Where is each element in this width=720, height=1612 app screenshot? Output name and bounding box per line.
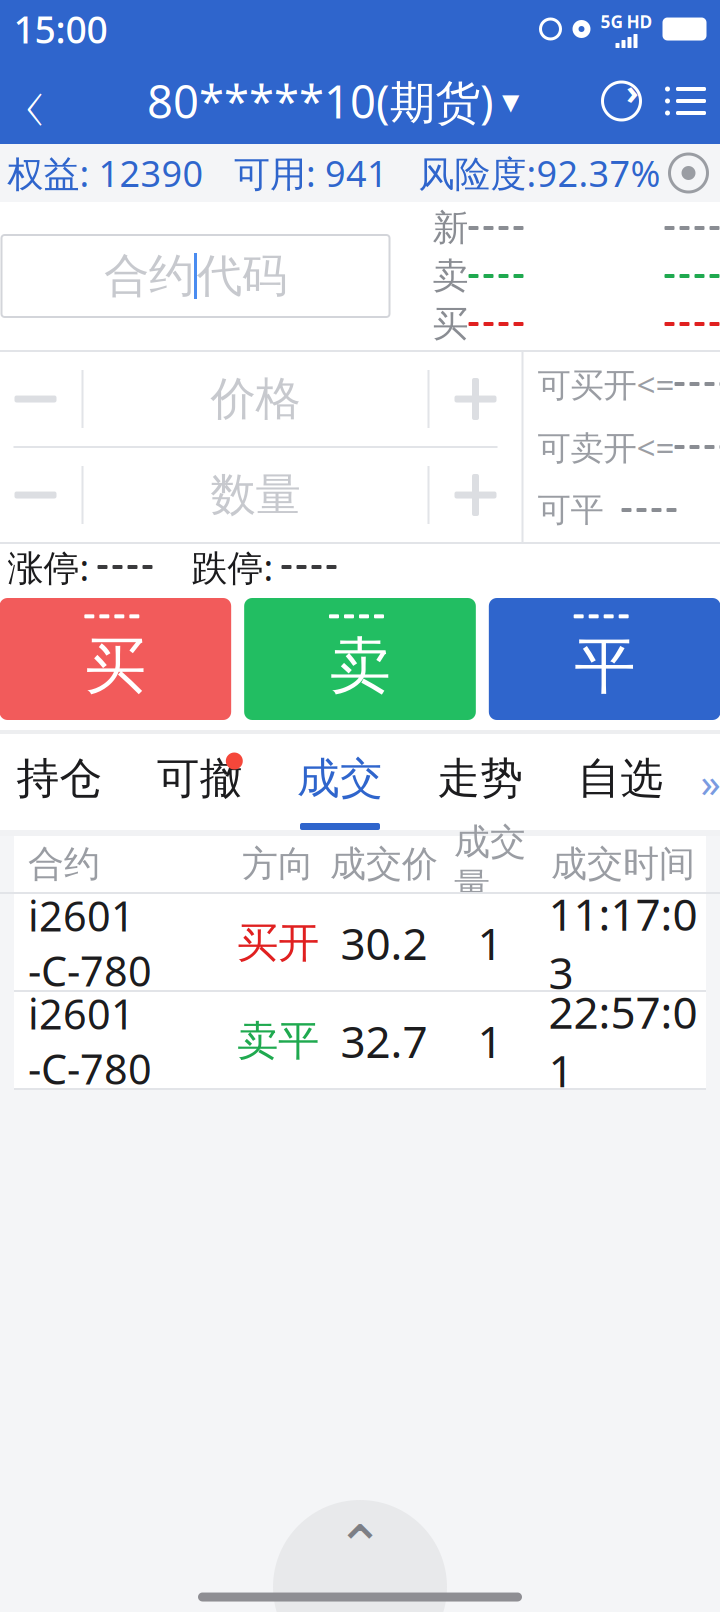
staticText: 卖: [432, 254, 468, 298]
button[interactable]: Expand panel: [273, 1490, 447, 1582]
staticText: 成交价: [330, 842, 438, 886]
staticText: 权益: 12390: [7, 149, 203, 197]
staticText: 80*****10(期货): [147, 71, 494, 131]
staticText: 新: [432, 206, 468, 250]
button[interactable]: i2601: [14, 992, 706, 1090]
button[interactable]: i2601: [14, 894, 706, 992]
button[interactable]: 卖: [244, 598, 476, 720]
staticText: 卖平: [237, 1016, 319, 1066]
staticText: 合约: [28, 842, 100, 886]
button[interactable]: 持仓: [0, 734, 130, 830]
staticText: 数量: [210, 467, 300, 523]
staticText: 30.2: [340, 914, 427, 972]
button[interactable]: Menu: [654, 58, 716, 144]
staticText: 持仓: [17, 752, 103, 805]
staticText: 跌停:: [191, 543, 273, 591]
staticText: ‹: [25, 46, 43, 156]
staticText: 22:57:01: [548, 983, 697, 1099]
staticText: 方向: [242, 842, 314, 886]
button[interactable]: 成交: [270, 734, 410, 830]
staticText: 1: [477, 1012, 502, 1070]
staticText: 平: [574, 628, 635, 704]
staticText: 成交量: [454, 820, 526, 908]
staticText: 自选: [577, 752, 663, 805]
staticText: -C-780: [28, 1041, 152, 1096]
button[interactable]: 合约: [1, 235, 389, 317]
staticText: 1: [477, 914, 502, 972]
button[interactable]: More tabs: [690, 734, 720, 830]
button[interactable]: 平: [489, 598, 720, 720]
button[interactable]: 买: [0, 598, 231, 720]
staticText: 风险度:92.37%: [418, 149, 660, 197]
staticText: ▾: [502, 81, 519, 121]
staticText: i2601: [28, 986, 135, 1041]
staticText: 32.7: [340, 1012, 427, 1070]
staticText: 走势: [437, 752, 523, 805]
staticText: 成交时间: [551, 842, 695, 886]
staticText: i2601: [28, 888, 135, 943]
staticText: HD: [626, 10, 652, 33]
staticText: 5G: [600, 10, 623, 33]
staticText: 可卖开<=: [537, 425, 674, 469]
button[interactable]: Decrease 价格: [0, 352, 81, 446]
staticText: »: [700, 755, 720, 808]
button[interactable]: 走势: [410, 734, 550, 830]
staticText: 可买开<=: [537, 362, 674, 406]
button[interactable]: Toggle visibility: [660, 145, 716, 201]
staticText: ⌃: [335, 1513, 384, 1580]
staticText: 11:17:03: [548, 885, 697, 1001]
button[interactable]: Increase 价格: [429, 352, 521, 446]
staticText: 卖: [329, 628, 390, 704]
button[interactable]: Refresh: [588, 58, 654, 144]
staticText: 买: [85, 628, 146, 704]
button[interactable]: Back: [0, 58, 77, 144]
staticText: 15:00: [13, 4, 107, 54]
staticText: 成交: [297, 752, 383, 805]
staticText: 可平: [537, 489, 613, 530]
button[interactable]: 80*****10(期货): [141, 58, 525, 144]
staticText: 可用: 941: [234, 149, 388, 197]
staticText: 合约: [104, 248, 194, 304]
staticText: 买: [432, 302, 468, 346]
button[interactable]: Increase 数量: [429, 448, 521, 542]
staticText: -C-780: [28, 943, 152, 998]
staticText: 涨停:: [7, 543, 89, 591]
staticText: 代码: [197, 248, 287, 304]
staticText: ›: [626, 68, 639, 114]
button[interactable]: Decrease 数量: [0, 448, 81, 542]
staticText: 买开: [237, 918, 319, 968]
button[interactable]: 可撤: [130, 734, 270, 830]
staticText: 价格: [210, 371, 300, 427]
staticText: 可撤: [157, 752, 243, 805]
button[interactable]: 自选: [550, 734, 690, 830]
